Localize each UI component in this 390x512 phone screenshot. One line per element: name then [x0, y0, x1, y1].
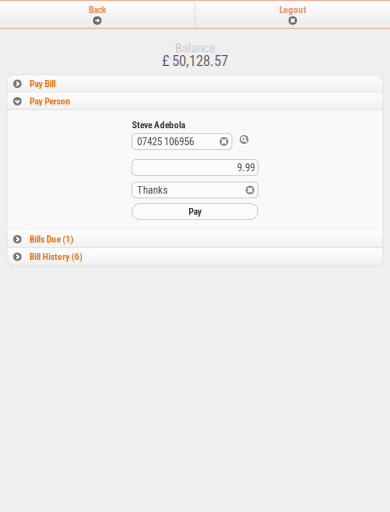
button[interactable]: Search contacts — [239, 134, 249, 145]
staticText: Pay Person — [30, 96, 71, 107]
button[interactable]: Bills Due (1) — [7, 230, 383, 248]
button[interactable]: Logout — [195, 1, 390, 28]
staticText: £ 50,128.57 — [162, 52, 228, 70]
staticText: Balance — [175, 40, 215, 56]
button[interactable]: Pay Bill — [7, 75, 383, 92]
button[interactable]: Back — [0, 1, 194, 28]
staticText: Back — [89, 4, 106, 15]
button[interactable]: Pay Person — [7, 92, 383, 110]
staticText: Pay Bill — [30, 78, 56, 89]
button[interactable]: Pay — [132, 203, 258, 219]
staticText: Thanks — [137, 184, 168, 196]
staticText: Bills Due (1) — [30, 234, 74, 245]
staticText: Logout — [279, 4, 306, 15]
staticText: Steve Adebola — [132, 119, 185, 130]
staticText: 9.99 — [237, 161, 255, 174]
button[interactable]: Bill History (6) — [7, 248, 383, 265]
staticText: Bill History (6) — [30, 251, 83, 262]
staticText: Pay — [188, 206, 201, 217]
staticText: 07425 106956 — [137, 135, 194, 148]
